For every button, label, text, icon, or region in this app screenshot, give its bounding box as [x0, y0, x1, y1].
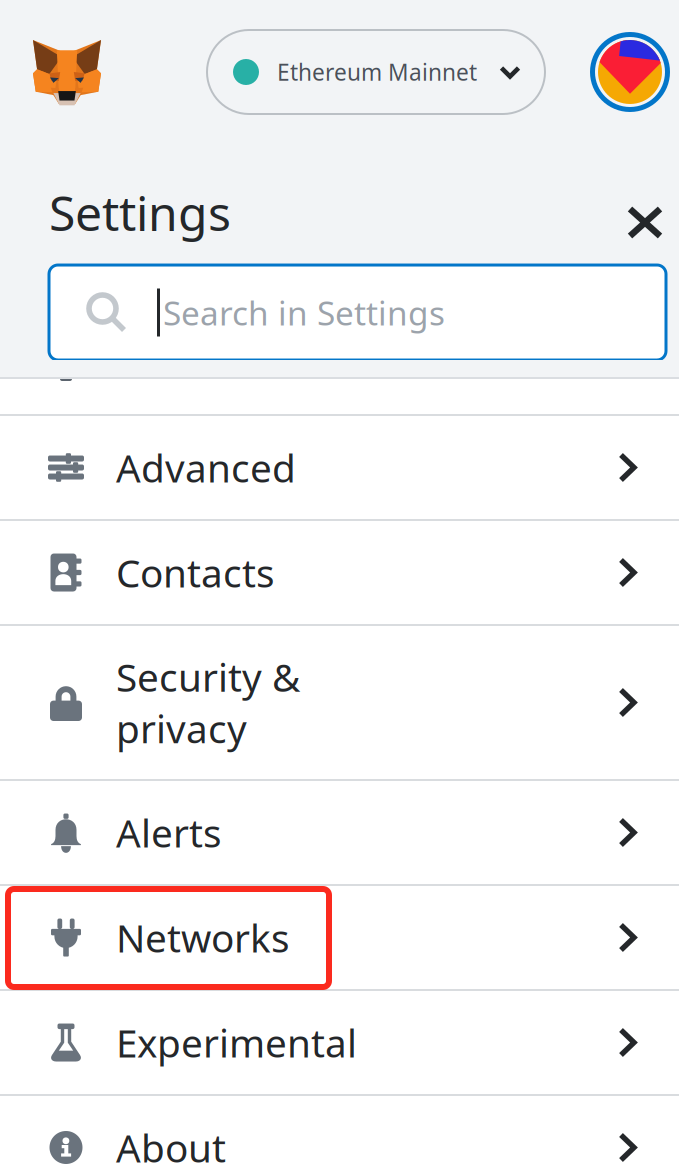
button[interactable]: Close [627, 206, 663, 239]
button[interactable]: Account [590, 32, 670, 112]
button[interactable]: Alerts [0, 781, 679, 884]
button[interactable]: Contacts [0, 521, 679, 624]
button[interactable]: Advanced [0, 416, 679, 519]
button[interactable]: About [0, 1096, 679, 1175]
staticText: Search in Settings [163, 290, 445, 335]
staticText: Networks [116, 912, 290, 963]
staticText: Contacts [116, 547, 275, 598]
button[interactable]: Security & privacy [0, 626, 679, 779]
button[interactable]: Networks [0, 886, 679, 989]
staticText: Settings [49, 181, 231, 244]
staticText: About [116, 1122, 226, 1173]
staticText: Advanced [116, 442, 296, 493]
staticText: Alerts [116, 807, 222, 858]
staticText: Ethereum Mainnet [277, 57, 477, 87]
button[interactable]: Experimental [0, 991, 679, 1094]
staticText: Experimental [116, 1017, 357, 1068]
staticText: Security & privacy [116, 651, 300, 754]
button[interactable]: Ethereum Mainnet [207, 30, 545, 114]
